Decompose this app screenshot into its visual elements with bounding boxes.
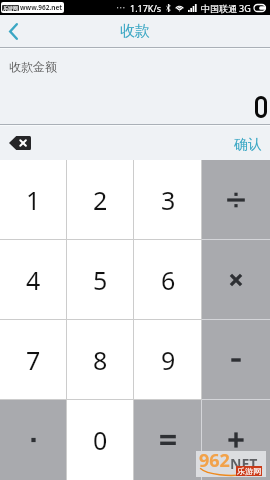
button[interactable]: 3 — [134, 160, 202, 240]
staticText: 乐游网 — [3, 5, 18, 11]
button[interactable]: 5 — [67, 240, 134, 320]
button[interactable]: Decimal point — [0, 400, 67, 480]
button[interactable]: 6 — [134, 240, 202, 320]
staticText: 4 — [26, 263, 41, 297]
button[interactable]: 4 — [0, 240, 67, 320]
staticText: 中国联通 — [201, 3, 237, 14]
staticText: 7 — [26, 343, 41, 377]
button[interactable]: Back — [0, 15, 26, 48]
button[interactable]: Plus — [202, 400, 270, 480]
staticText: 收款 — [120, 22, 150, 41]
button[interactable]: Equals — [134, 400, 202, 480]
button[interactable]: Multiply — [202, 240, 270, 320]
button[interactable]: 2 — [67, 160, 134, 240]
staticText: 0 — [93, 423, 108, 457]
button[interactable]: 8 — [67, 320, 134, 400]
button[interactable]: 9 — [134, 320, 202, 400]
staticText: 8 — [93, 343, 108, 377]
staticText: 收款金额 — [9, 59, 57, 74]
staticText: 6 — [161, 263, 176, 297]
button[interactable]: 确认 — [229, 130, 267, 160]
staticText: 1 — [26, 183, 41, 217]
staticText: 3 — [161, 183, 176, 217]
staticText: 乐游网 — [237, 466, 261, 476]
staticText: 2 — [93, 183, 108, 217]
staticText: 确认 — [234, 136, 262, 154]
button[interactable]: 7 — [0, 320, 67, 400]
button[interactable]: Backspace — [4, 130, 36, 156]
staticText: ⋯ — [116, 2, 126, 14]
staticText: 9 — [161, 343, 176, 377]
button[interactable]: 0 — [67, 400, 134, 480]
staticText: 962 — [199, 448, 230, 473]
staticText: NET — [230, 454, 258, 473]
button[interactable]: Minus — [202, 320, 270, 400]
staticText: www.962.net — [20, 3, 63, 12]
staticText: 1.17K/s — [130, 2, 162, 14]
button[interactable]: Divide — [202, 160, 270, 240]
staticText: 3G — [239, 2, 251, 14]
staticText: 5 — [93, 263, 108, 297]
button[interactable]: 1 — [0, 160, 67, 240]
